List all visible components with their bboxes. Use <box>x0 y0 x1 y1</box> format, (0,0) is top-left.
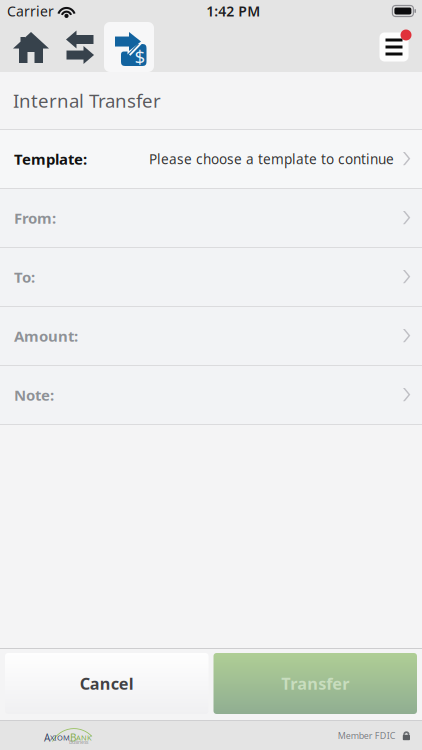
staticText: Transfer <box>281 672 349 695</box>
staticText: Please choose a template to continue <box>149 150 394 168</box>
staticText: From: <box>14 208 56 228</box>
button[interactable]: Note: <box>0 366 422 425</box>
staticText: $ <box>134 44 145 69</box>
button[interactable]: Cancel <box>5 653 208 714</box>
button[interactable]: Amount: <box>0 307 422 366</box>
staticText: 1:42 PM <box>206 1 260 21</box>
staticText: Cancel <box>80 672 134 695</box>
staticText: XIOM <box>50 733 70 743</box>
staticText: Business <box>69 738 88 746</box>
staticText: Member FDIC <box>338 729 396 742</box>
staticText: Carrier <box>7 1 54 21</box>
button[interactable]: Transfer <box>213 653 417 714</box>
staticText: A <box>44 731 50 744</box>
button[interactable]: Transfers <box>56 22 104 72</box>
staticText: Internal Transfer <box>13 88 161 113</box>
staticText: B <box>70 731 76 744</box>
staticText: Template: <box>14 149 87 169</box>
button[interactable]: Internal Transfer <box>104 22 154 72</box>
button[interactable]: Home <box>6 22 56 72</box>
button[interactable]: To: <box>0 248 422 307</box>
staticText: Note: <box>14 385 54 405</box>
button[interactable]: From: <box>0 189 422 248</box>
button[interactable]: Template: <box>0 130 422 189</box>
staticText: To: <box>14 267 35 287</box>
button[interactable]: Menu <box>377 30 411 64</box>
staticText: ANK <box>76 733 92 743</box>
staticText: Amount: <box>14 326 78 346</box>
